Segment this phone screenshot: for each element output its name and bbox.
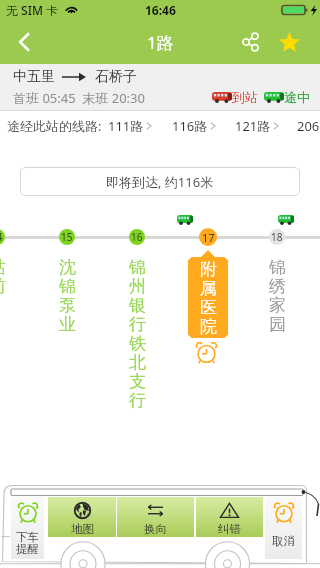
staticText: 业	[59, 314, 76, 333]
staticText: 18	[271, 230, 283, 244]
staticText: 16	[131, 230, 143, 244]
button[interactable]: 14	[0, 229, 5, 245]
button[interactable]: Favorite	[267, 20, 311, 64]
staticText: 途中	[284, 89, 310, 105]
staticText: 站	[0, 257, 6, 276]
staticText: 行	[129, 390, 146, 409]
staticText: 1路	[147, 31, 174, 54]
staticText: 116路	[172, 117, 208, 135]
button[interactable]: 121路	[235, 117, 279, 135]
staticText: 北	[129, 352, 146, 371]
staticText: 锦	[129, 257, 146, 276]
button[interactable]: 17	[199, 228, 217, 246]
staticText: 地图	[71, 522, 94, 536]
staticText: 取消	[272, 534, 295, 548]
staticText: 家	[269, 295, 286, 314]
staticText: 121路	[235, 117, 271, 135]
staticText: 下车	[16, 530, 39, 544]
staticText: 111路	[108, 117, 144, 135]
button[interactable]: 15	[59, 229, 75, 245]
button[interactable]: 即将到达, 约116米	[20, 167, 300, 196]
staticText: 途经此站的线路:	[7, 117, 102, 135]
staticText: 医	[200, 297, 217, 316]
button[interactable]: 18	[269, 229, 285, 245]
button[interactable]: Back	[0, 20, 48, 64]
staticText: 206	[297, 117, 320, 135]
staticText: 园	[269, 314, 286, 333]
staticText: 前	[0, 276, 6, 295]
button[interactable]: Get off reminder	[11, 497, 44, 559]
staticText: 州	[129, 276, 146, 295]
staticText: 中五里	[13, 68, 55, 86]
staticText: 附	[200, 259, 217, 278]
staticText: 17	[202, 230, 215, 245]
staticText: 纠错	[218, 522, 241, 536]
button[interactable]: 206	[297, 117, 320, 135]
button[interactable]: 地图	[48, 497, 116, 537]
staticText: 锦	[269, 257, 286, 276]
staticText: 14	[0, 230, 3, 244]
staticText: 属	[200, 278, 217, 297]
staticText: 首班 05:45 末班 20:30	[13, 89, 145, 107]
staticText: 15	[61, 230, 73, 244]
staticText: 沈	[59, 257, 76, 276]
staticText: 院	[200, 316, 217, 335]
button[interactable]: 换向	[117, 497, 194, 537]
button[interactable]: 16	[129, 229, 145, 245]
staticText: 铁	[129, 333, 146, 352]
staticText: 提醒	[16, 542, 39, 556]
staticText: 无 SIM 卡	[6, 2, 59, 18]
staticText: 16:46	[145, 2, 176, 18]
staticText: 银	[129, 295, 146, 314]
staticText: 换向	[144, 522, 167, 536]
button[interactable]: 116路	[172, 117, 216, 135]
staticText: 行	[129, 314, 146, 333]
staticText: 到站	[232, 89, 258, 105]
staticText: 支	[129, 371, 146, 390]
button[interactable]: Share	[229, 20, 273, 64]
staticText: 石桥子	[95, 68, 137, 86]
button[interactable]: 纠错	[196, 497, 263, 537]
button[interactable]: 111路	[108, 117, 152, 135]
staticText: 绣	[269, 276, 286, 295]
button[interactable]: Cancel	[265, 497, 302, 559]
staticText: 锦	[59, 276, 76, 295]
staticText: 即将到达, 约116米	[106, 173, 214, 191]
staticText: 泵	[59, 295, 76, 314]
